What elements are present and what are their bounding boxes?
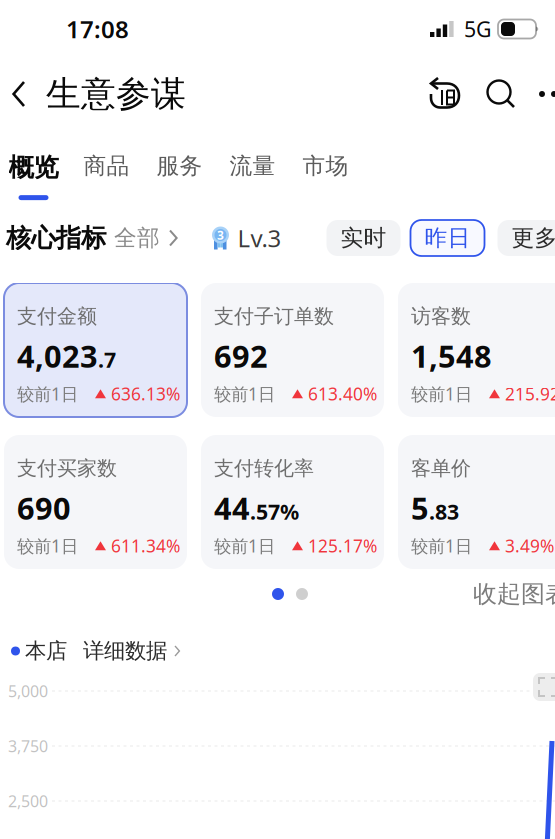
- button[interactable]: 详细数据: [83, 638, 182, 664]
- staticText: 支付买家数: [17, 456, 117, 481]
- button[interactable]: 实时: [326, 220, 400, 256]
- staticText: Lv.3: [237, 222, 281, 254]
- staticText: 昨日: [424, 224, 470, 252]
- button[interactable]: 全部: [114, 219, 179, 257]
- staticText: 支付转化率: [214, 456, 314, 481]
- staticText: 5G: [464, 15, 492, 43]
- staticText: 实时: [340, 224, 386, 252]
- button[interactable]: Search: [476, 58, 526, 130]
- staticText: 125.17%: [308, 534, 377, 557]
- button[interactable]: 支付金额: [4, 283, 187, 417]
- staticText: 生意参谋: [46, 73, 186, 115]
- button[interactable]: 流量: [216, 130, 289, 205]
- staticText: 44: [214, 488, 250, 528]
- staticText: 2,500: [8, 790, 48, 812]
- button[interactable]: 支付子订单数: [201, 283, 384, 417]
- staticText: 全部: [114, 224, 160, 252]
- staticText: 5: [411, 488, 429, 528]
- staticText: .83: [429, 497, 459, 526]
- staticText: 较前1日: [214, 382, 275, 405]
- staticText: 流量: [229, 152, 275, 180]
- staticText: 较前1日: [17, 382, 78, 405]
- staticText: 商品: [83, 152, 129, 180]
- staticText: 核心指标: [6, 222, 106, 253]
- button[interactable]: 服务: [143, 130, 216, 205]
- staticText: 3.49%: [505, 534, 554, 557]
- staticText: 215.92%: [505, 382, 555, 405]
- button[interactable]: 客单价: [398, 435, 555, 569]
- staticText: 1,548: [411, 336, 492, 376]
- button[interactable]: 访客数: [398, 283, 555, 417]
- staticText: 692: [214, 336, 268, 376]
- button[interactable]: 市场: [289, 130, 362, 205]
- staticText: 3,750: [8, 735, 48, 757]
- staticText: 较前1日: [411, 382, 472, 405]
- staticText: .7: [98, 345, 116, 374]
- button[interactable]: 支付买家数: [4, 435, 187, 569]
- button[interactable]: More: [530, 58, 555, 130]
- staticText: 613.40%: [308, 382, 377, 405]
- button[interactable]: Fullscreen chart: [533, 673, 555, 701]
- staticText: 支付金额: [17, 304, 97, 329]
- button[interactable]: 商品: [70, 130, 143, 205]
- staticText: 本店: [25, 638, 67, 664]
- staticText: 5,000: [8, 680, 48, 702]
- staticText: 636.13%: [111, 382, 180, 405]
- staticText: 611.34%: [111, 534, 180, 557]
- button[interactable]: 支付转化率: [201, 435, 384, 569]
- staticText: .57%: [250, 497, 299, 526]
- staticText: 服务: [156, 152, 202, 180]
- staticText: 支付子订单数: [214, 304, 334, 329]
- staticText: 较前1日: [17, 534, 78, 557]
- staticText: 3: [217, 227, 224, 243]
- button[interactable]: 昨日: [410, 220, 484, 256]
- staticText: 客单价: [411, 456, 471, 481]
- button[interactable]: Back: [0, 58, 38, 130]
- staticText: 4,023: [17, 336, 98, 376]
- button[interactable]: 更多: [497, 220, 555, 256]
- staticText: 更多: [511, 224, 555, 252]
- staticText: 访客数: [411, 304, 471, 329]
- staticText: 市场: [302, 152, 348, 180]
- staticText: 详细数据: [83, 638, 167, 664]
- button[interactable]: 收起图表: [473, 579, 555, 609]
- button[interactable]: Switch to old version: [418, 58, 470, 130]
- staticText: 690: [17, 488, 71, 528]
- staticText: 概览: [8, 152, 58, 183]
- staticText: 较前1日: [411, 534, 472, 557]
- staticText: 17:08: [66, 13, 129, 45]
- staticText: 收起图表: [473, 579, 555, 609]
- button[interactable]: 概览: [0, 130, 70, 205]
- staticText: 较前1日: [214, 534, 275, 557]
